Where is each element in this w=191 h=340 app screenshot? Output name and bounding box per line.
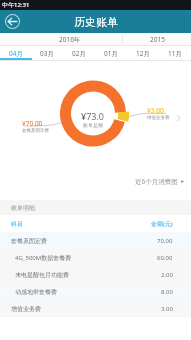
- staticText: 2016年: [59, 35, 81, 44]
- staticText: 套餐及固定费: [11, 237, 47, 245]
- button[interactable]: 套餐及固定费: [0, 232, 191, 249]
- button[interactable]: 2015: [123, 33, 191, 45]
- button[interactable]: Back: [4, 13, 21, 30]
- staticText: 增值业务费: [11, 305, 41, 313]
- staticText: 增值业务费: [147, 115, 170, 121]
- staticText: 70.00: [157, 237, 173, 245]
- staticText: 动感地带套餐费: [15, 288, 57, 296]
- button[interactable]: 12月: [127, 46, 159, 60]
- staticText: ¥3.00: [147, 106, 164, 115]
- staticText: 4G_500M数据套餐费: [15, 254, 72, 262]
- staticText: 金额(元): [151, 220, 173, 228]
- staticText: 04月: [9, 49, 23, 58]
- staticText: 8.00: [161, 288, 173, 296]
- staticText: ¥73.0: [81, 110, 105, 122]
- staticText: 02月: [72, 49, 86, 58]
- staticText: 01月: [104, 49, 118, 58]
- staticText: 科目: [11, 220, 23, 228]
- button[interactable]: 03月: [31, 46, 63, 60]
- staticText: 3.00: [161, 305, 173, 313]
- button[interactable]: 近6个月消费图: [0, 175, 191, 187]
- button[interactable]: 02月: [63, 46, 95, 60]
- staticText: 中午12:31: [2, 1, 30, 9]
- staticText: 2015: [150, 35, 165, 44]
- button[interactable]: 动感地带套餐费: [0, 283, 191, 300]
- button[interactable]: 01月: [95, 46, 127, 60]
- staticText: 12月: [136, 49, 150, 58]
- staticText: 套餐及固定费: [22, 128, 49, 134]
- button[interactable]: 2016年: [0, 33, 122, 45]
- staticText: 近6个月消费图: [135, 177, 178, 186]
- button[interactable]: 4G_500M数据套餐费: [0, 249, 191, 266]
- staticText: 03月: [40, 49, 54, 58]
- staticText: 来电提醒包月功能费: [15, 271, 69, 279]
- staticText: 历史账单: [74, 15, 118, 29]
- button[interactable]: 科目: [0, 215, 191, 232]
- button[interactable]: 11月: [159, 46, 191, 60]
- button[interactable]: 来电提醒包月功能费: [0, 266, 191, 283]
- staticText: ¥70.00: [22, 119, 43, 128]
- staticText: 账单总额: [83, 122, 103, 128]
- staticText: 2.00: [161, 271, 173, 279]
- staticText: 60.00: [157, 254, 173, 262]
- staticText: 11月: [168, 49, 182, 58]
- button[interactable]: 增值业务费: [0, 300, 191, 317]
- button[interactable]: 04月: [0, 46, 31, 60]
- staticText: 账单明细: [11, 204, 35, 212]
